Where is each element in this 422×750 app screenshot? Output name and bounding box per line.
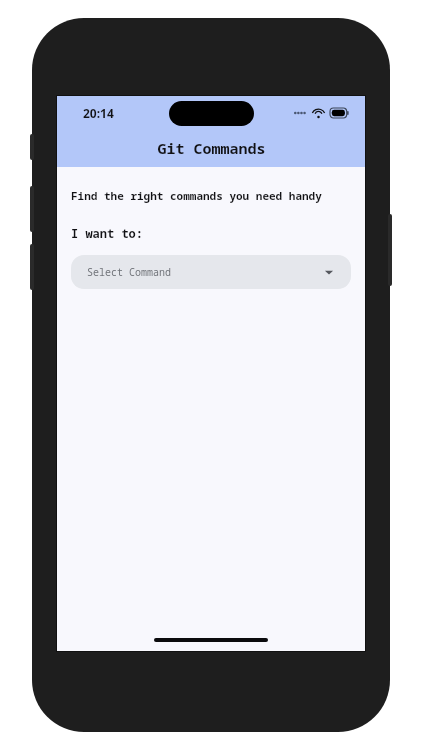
staticText: Find the right commands you need handy (71, 188, 322, 203)
other: Open command list (323, 266, 335, 278)
staticText: I want to: (71, 225, 144, 241)
staticText: Git Commands (157, 138, 266, 158)
staticText: Select Command (87, 265, 323, 279)
staticText: 20:14 (83, 105, 114, 121)
button[interactable]: Select Command (71, 255, 351, 289)
